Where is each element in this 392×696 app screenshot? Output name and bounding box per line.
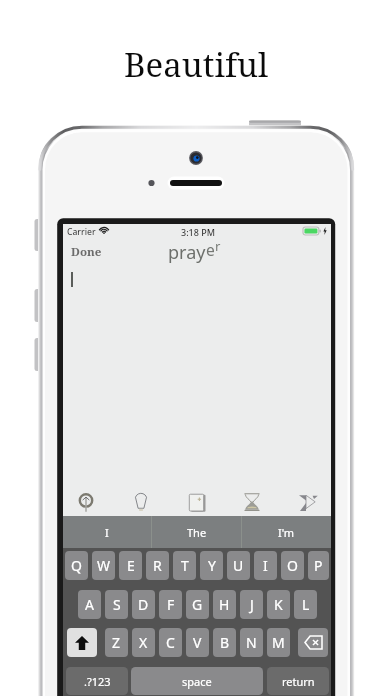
staticText: D	[138, 595, 149, 614]
button[interactable]: Done	[71, 244, 102, 260]
staticText: F	[167, 595, 175, 614]
button[interactable]: Z	[105, 628, 128, 657]
button[interactable]: O	[281, 551, 304, 580]
button[interactable]: A	[78, 590, 101, 619]
button[interactable]: P	[308, 551, 329, 580]
button[interactable]: B	[213, 628, 236, 657]
button[interactable]: The	[152, 516, 241, 548]
button[interactable]: X	[132, 628, 155, 657]
staticText: Done	[71, 244, 102, 260]
staticText: V	[193, 633, 202, 652]
staticText: P	[314, 556, 323, 575]
staticText: I	[105, 525, 109, 540]
button[interactable]: C	[159, 628, 182, 657]
staticText: U	[233, 556, 244, 575]
button[interactable]: U	[227, 551, 250, 580]
staticText: r	[215, 237, 221, 255]
button[interactable]: Send	[292, 479, 324, 517]
button[interactable]: V	[186, 628, 209, 657]
staticText: A	[85, 595, 94, 614]
staticText: e	[206, 239, 215, 260]
staticText: W	[97, 556, 111, 575]
button[interactable]: W	[92, 551, 115, 580]
staticText: E	[127, 556, 135, 575]
staticText: 3:18 PM	[181, 226, 215, 238]
staticText: L	[302, 595, 310, 614]
staticText: I	[263, 556, 268, 575]
button[interactable]: Q	[65, 551, 88, 580]
staticText: T	[181, 556, 189, 575]
button[interactable]: New note	[181, 479, 213, 517]
staticText: S	[113, 595, 121, 614]
staticText: O	[287, 556, 298, 575]
staticText: J	[250, 595, 254, 614]
staticText: G	[192, 595, 203, 614]
staticText: K	[274, 595, 283, 614]
staticText: M	[272, 633, 285, 652]
button[interactable]: S	[105, 590, 128, 619]
staticText: H	[219, 595, 230, 614]
button[interactable]: return	[267, 667, 329, 695]
button[interactable]: L	[294, 590, 317, 619]
staticText: return	[282, 674, 315, 689]
button[interactable]: space	[131, 667, 263, 695]
staticText: Carrier	[67, 226, 96, 238]
button[interactable]: I'm	[242, 516, 331, 548]
button[interactable]: I	[254, 551, 277, 580]
button[interactable]: R	[146, 551, 169, 580]
button[interactable]: I	[63, 516, 151, 548]
button[interactable]: E	[119, 551, 142, 580]
staticText: Y	[208, 556, 216, 575]
staticText: N	[246, 633, 257, 652]
button[interactable]: H	[213, 590, 236, 619]
button[interactable]: G	[186, 590, 209, 619]
button[interactable]: J	[240, 590, 263, 619]
staticText: I'm	[278, 525, 295, 540]
staticText: The	[187, 525, 207, 540]
button[interactable]: D	[132, 590, 155, 619]
button[interactable]: History	[236, 479, 268, 517]
button[interactable]: F	[159, 590, 182, 619]
staticText: Beautiful	[124, 42, 269, 87]
staticText: pray	[168, 240, 206, 265]
button[interactable]: .?123	[66, 667, 128, 695]
staticText: C	[166, 633, 175, 652]
button[interactable]: M	[267, 628, 290, 657]
staticText: B	[220, 633, 230, 652]
staticText: X	[139, 633, 148, 652]
staticText: space	[182, 674, 212, 689]
button[interactable]: Share	[70, 479, 102, 517]
button[interactable]: Backspace	[298, 628, 328, 657]
button[interactable]: N	[240, 628, 263, 657]
staticText: .?123	[84, 674, 111, 689]
staticText: Z	[112, 633, 121, 652]
button[interactable]: Y	[200, 551, 223, 580]
button[interactable]: Shift	[67, 628, 97, 657]
staticText: R	[153, 556, 162, 575]
button[interactable]: T	[173, 551, 196, 580]
staticText: Q	[71, 556, 82, 575]
button[interactable]: K	[267, 590, 290, 619]
button[interactable]: Ideas	[125, 479, 157, 517]
